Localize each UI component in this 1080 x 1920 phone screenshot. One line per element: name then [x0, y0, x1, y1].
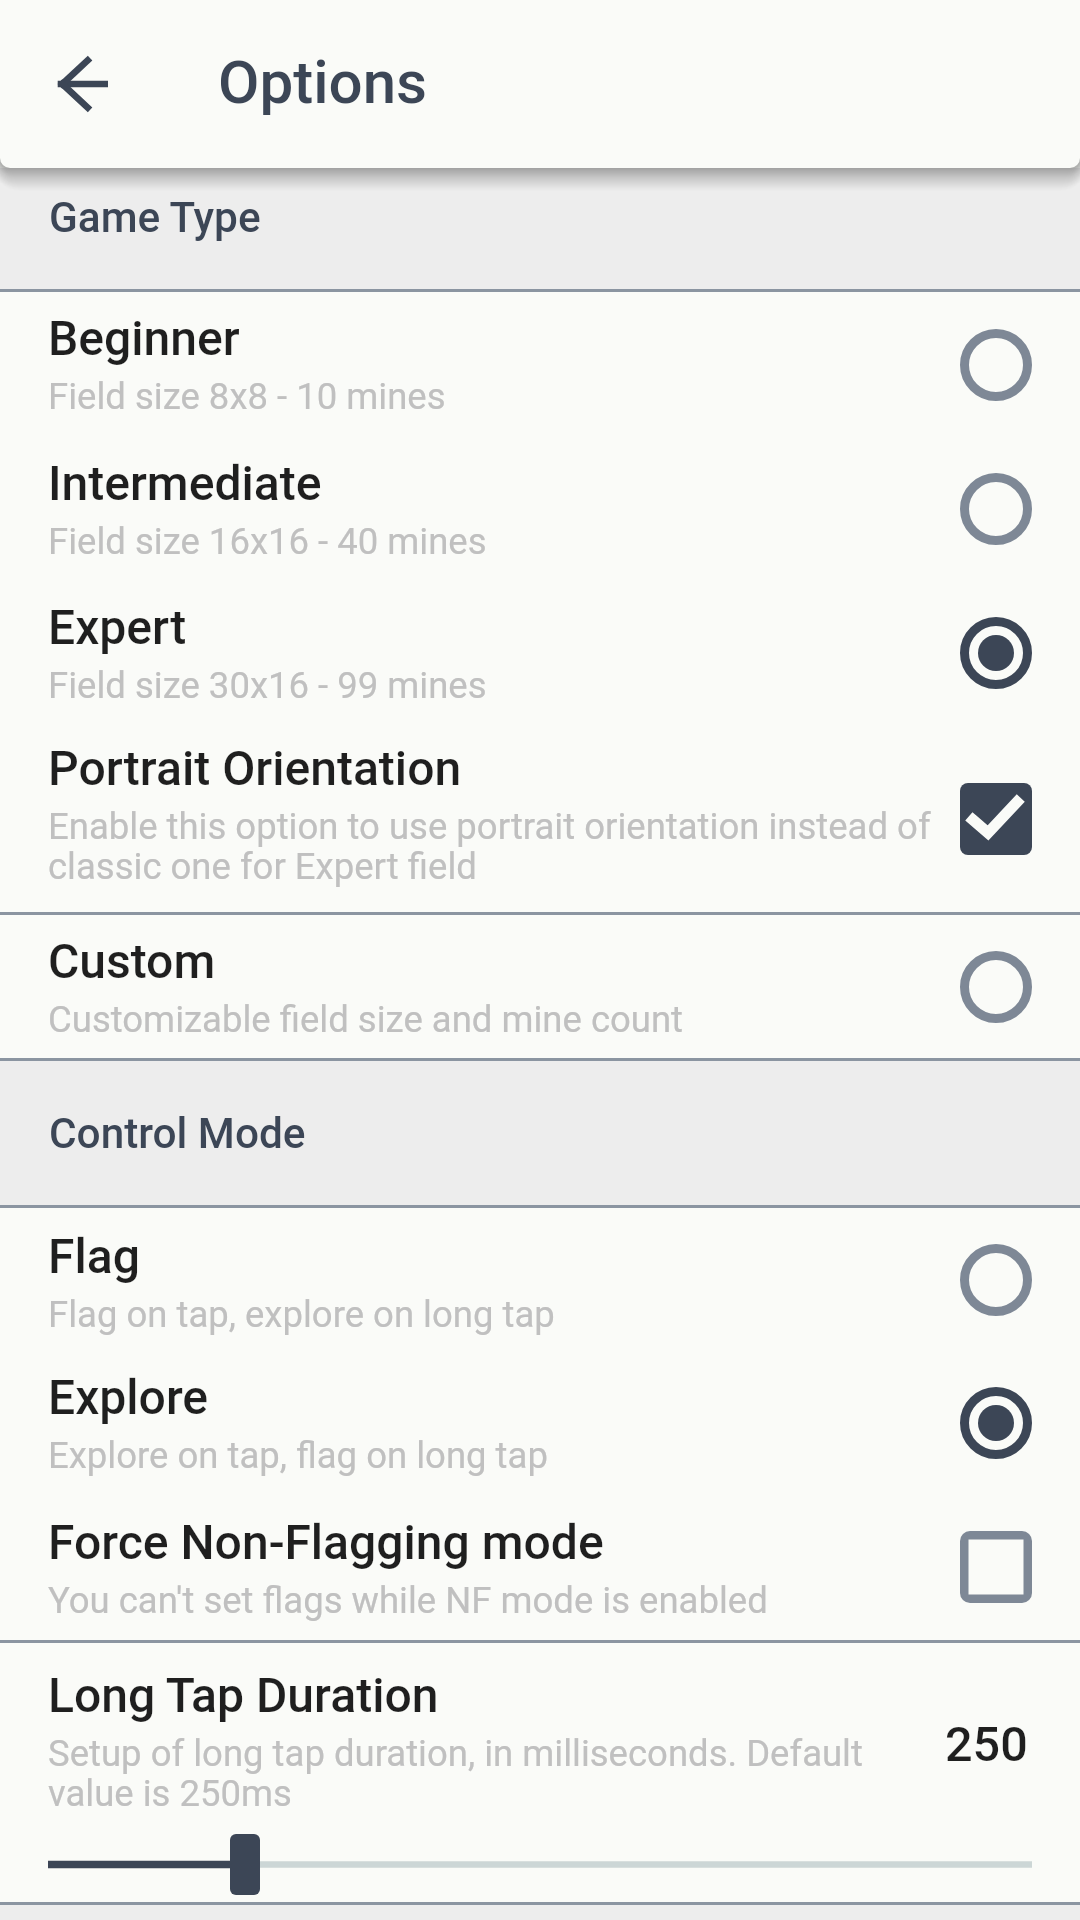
button[interactable]: Back: [20, 24, 140, 144]
staticText: Enable this option to use portrait orien…: [48, 805, 931, 888]
staticText: Portrait Orientation: [48, 740, 462, 796]
button[interactable]: Explore: [0, 1351, 1080, 1494]
button[interactable]: Expert: [0, 581, 1080, 725]
button[interactable]: Beginner: [0, 292, 1080, 437]
staticText: 250: [945, 1716, 1028, 1773]
button[interactable]: Force Non-Flagging mode: [0, 1494, 1080, 1640]
button[interactable]: Portrait Orientation: [0, 725, 1080, 912]
staticText: Intermediate: [48, 455, 322, 511]
button[interactable]: Flag: [0, 1208, 1080, 1351]
staticText: Control Mode: [49, 1109, 306, 1159]
staticText: Long Tap Duration: [48, 1667, 439, 1723]
staticText: Field size 30x16 - 99 mines: [48, 664, 487, 707]
button[interactable]: Custom: [0, 915, 1080, 1058]
staticText: Options: [218, 47, 428, 117]
staticText: Flag: [48, 1228, 140, 1284]
staticText: Setup of long tap duration, in milliseco…: [48, 1732, 863, 1815]
staticText: Field size 8x8 - 10 mines: [48, 375, 446, 418]
staticText: Flag on tap, explore on long tap: [48, 1293, 555, 1336]
staticText: Expert: [48, 599, 187, 655]
button[interactable]: Intermediate: [0, 437, 1080, 581]
staticText: Field size 16x16 - 40 mines: [48, 520, 487, 563]
button[interactable]: Long Tap Duration: [0, 1643, 1080, 1902]
staticText: Force Non-Flagging mode: [48, 1514, 604, 1570]
staticText: Customizable field size and mine count: [48, 998, 684, 1041]
staticText: Explore: [48, 1369, 209, 1425]
staticText: You can't set flags while NF mode is ena…: [48, 1579, 768, 1622]
staticText: Explore on tap, flag on long tap: [48, 1434, 548, 1477]
staticText: Game Type: [49, 193, 261, 243]
staticText: Beginner: [48, 310, 240, 366]
staticText: Custom: [48, 933, 216, 989]
